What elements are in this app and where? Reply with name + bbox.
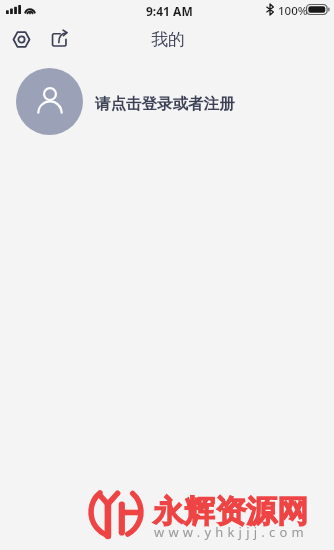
staticText: 我的	[151, 29, 185, 50]
button[interactable]: Share	[44, 24, 72, 52]
button[interactable]: Settings	[7, 25, 35, 53]
button[interactable]: 请点击登录或者注册	[0, 56, 334, 134]
staticText: 100%	[278, 3, 308, 19]
staticText: 请点击登录或者注册	[95, 94, 235, 114]
staticText: 永辉资源网	[153, 492, 308, 531]
staticText: www.yhkjjj.com	[154, 523, 308, 541]
staticText: 9:41 AM	[146, 3, 193, 19]
